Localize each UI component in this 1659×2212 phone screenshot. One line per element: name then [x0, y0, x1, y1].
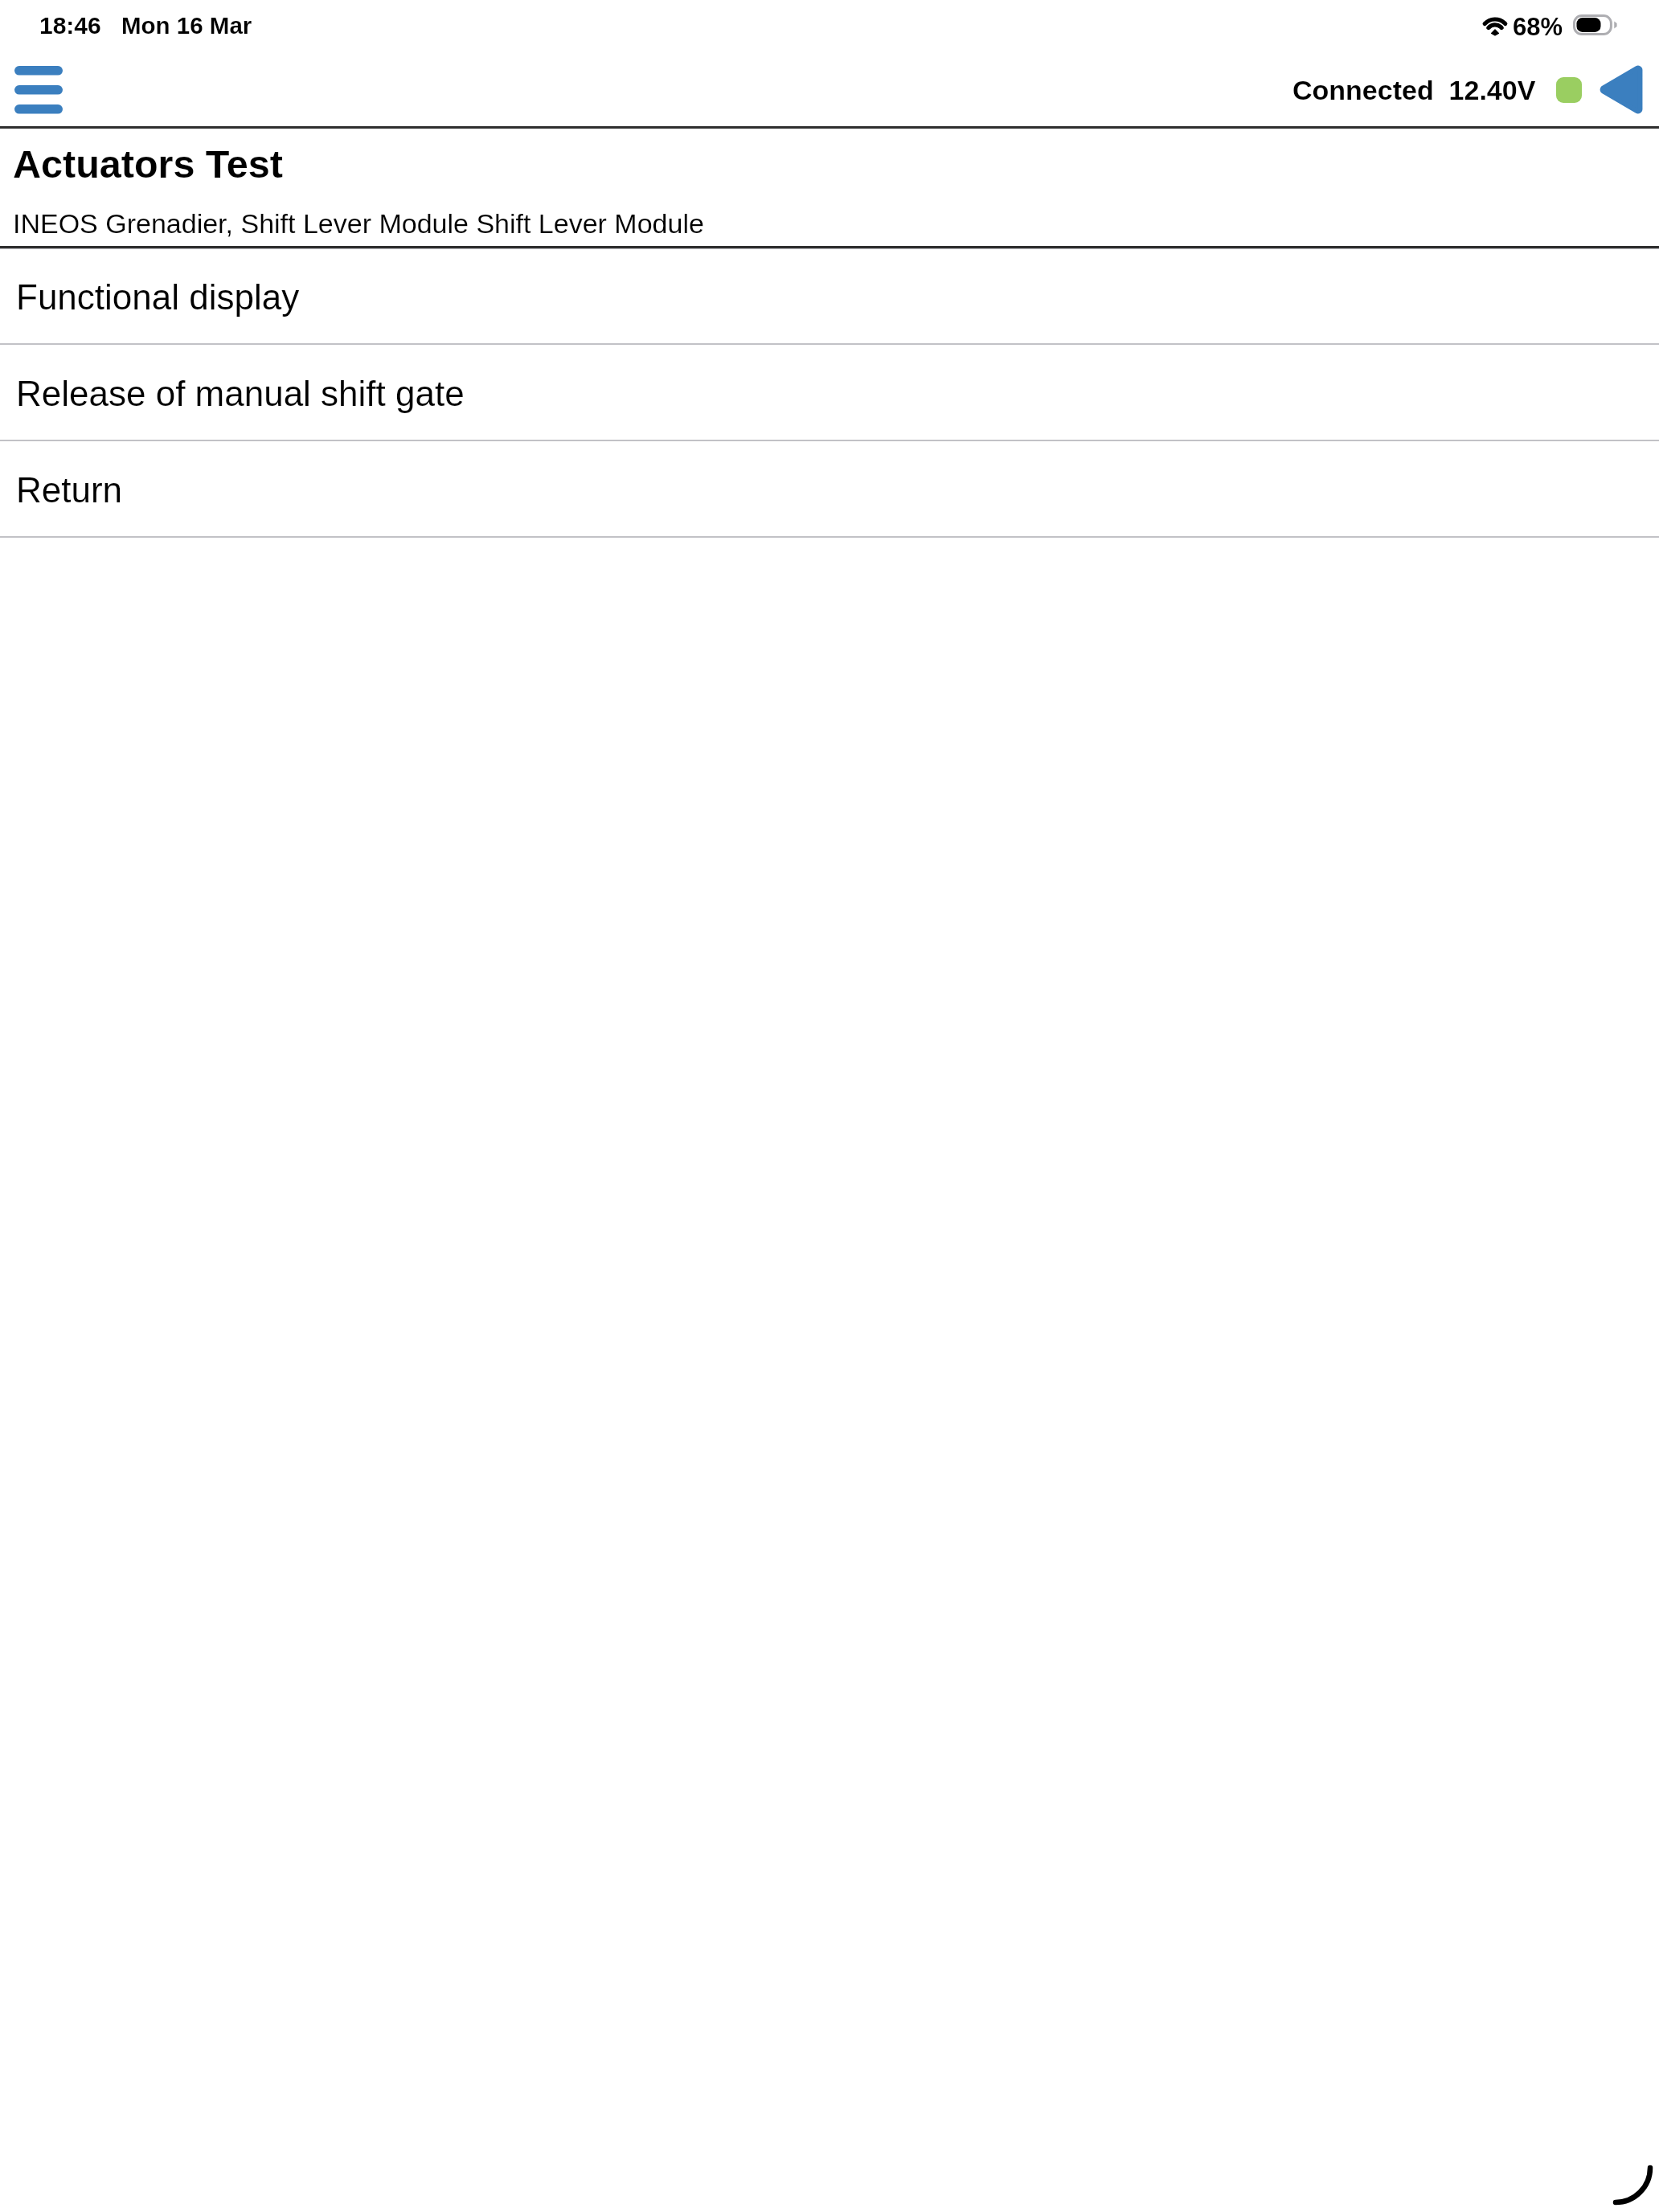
- staticText: Release of manual shift gate: [16, 374, 465, 413]
- staticText: Functional display: [16, 277, 300, 317]
- staticText: Actuators Test: [13, 142, 283, 186]
- staticText: Return: [16, 470, 123, 510]
- button[interactable]: Functional display: [0, 249, 1659, 343]
- button[interactable]: Return: [0, 441, 1659, 536]
- staticText: INEOS Grenadier, Shift Lever Module Shif…: [13, 208, 704, 239]
- staticText: 68%: [1513, 13, 1563, 41]
- button[interactable]: Back: [1599, 65, 1643, 114]
- button[interactable]: Menu: [14, 61, 63, 119]
- staticText: 18:46: [39, 12, 101, 39]
- staticText: Connected 12.40V: [1292, 75, 1536, 105]
- button[interactable]: Connected 12.40V: [1292, 68, 1582, 112]
- staticText: Mon 16 Mar: [121, 12, 252, 39]
- button[interactable]: Release of manual shift gate: [0, 345, 1659, 440]
